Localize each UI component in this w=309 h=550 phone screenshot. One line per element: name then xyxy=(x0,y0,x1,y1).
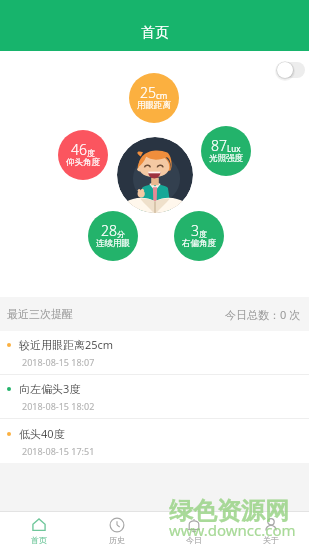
staticText: 今日总数：0 次 xyxy=(225,307,301,322)
staticText: 首页 xyxy=(141,24,169,42)
staticText: 光照强度 xyxy=(209,153,243,164)
staticText: 连续用眼 xyxy=(96,238,130,249)
staticText: Lux xyxy=(227,143,241,154)
staticText: 28 xyxy=(101,221,117,240)
button[interactable]: 较近用眼距离25cm xyxy=(0,331,309,374)
button[interactable]: 关于 xyxy=(232,512,309,550)
button[interactable]: 用眼距离 xyxy=(129,73,179,123)
staticText: 度 xyxy=(199,229,207,239)
button[interactable]: 今日 xyxy=(155,512,232,550)
staticText: 度 xyxy=(87,148,95,158)
staticText: 3 xyxy=(191,221,199,240)
staticText: 2018-08-15 17:51 xyxy=(22,445,95,457)
staticText: 绿色资源网 xyxy=(169,496,289,526)
button[interactable]: Power toggle xyxy=(273,57,307,81)
staticText: 25 xyxy=(140,83,156,102)
staticText: 87 xyxy=(211,136,227,155)
staticText: www.downcc.com xyxy=(169,520,296,540)
button[interactable]: 仰头角度 xyxy=(58,130,108,180)
staticText: 用眼距离 xyxy=(137,100,171,111)
staticText: 关于 xyxy=(263,535,279,545)
staticText: 分 xyxy=(117,229,125,239)
button[interactable]: 历史 xyxy=(78,512,155,550)
staticText: 2018-08-15 18:07 xyxy=(22,356,95,368)
staticText: 右偏角度 xyxy=(182,238,216,249)
button[interactable]: 低头40度 xyxy=(0,419,309,463)
button[interactable]: 首页 xyxy=(0,512,78,550)
staticText: 2018-08-15 18:02 xyxy=(22,400,95,412)
staticText: 今日 xyxy=(186,535,202,545)
button[interactable]: 连续用眼 xyxy=(88,211,138,261)
staticText: 仰头角度 xyxy=(66,157,100,168)
staticText: cm xyxy=(156,90,168,101)
staticText: 46 xyxy=(71,140,87,159)
staticText: 较近用眼距离25cm xyxy=(19,337,114,352)
button[interactable]: 光照强度 xyxy=(201,126,251,176)
button[interactable]: 向左偏头3度 xyxy=(0,375,309,418)
button[interactable]: 右偏角度 xyxy=(174,211,224,261)
staticText: 最近三次提醒 xyxy=(7,307,73,321)
staticText: 首页 xyxy=(31,535,47,545)
staticText: 历史 xyxy=(109,535,125,545)
staticText: 低头40度 xyxy=(19,426,65,441)
staticText: 向左偏头3度 xyxy=(19,381,81,396)
